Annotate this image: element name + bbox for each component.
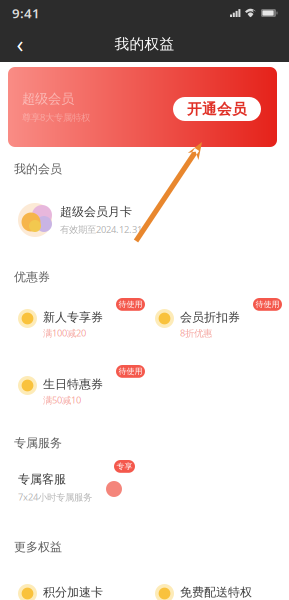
- button[interactable]: 积分加速卡: [16, 571, 138, 600]
- staticText: 积分加速卡: [43, 585, 103, 600]
- staticText: 满50减10: [43, 394, 81, 406]
- button[interactable]: Back: [6, 30, 34, 58]
- staticText: 超级会员: [22, 91, 74, 107]
- button[interactable]: 新人专享券: [16, 296, 138, 334]
- staticText: 更多权益: [14, 540, 62, 554]
- button[interactable]: 生日特惠券: [16, 363, 138, 401]
- staticText: 免费配送特权: [180, 585, 252, 600]
- button[interactable]: 专属客服: [18, 472, 178, 506]
- button[interactable]: 会员折扣券: [153, 296, 275, 334]
- staticText: 我的会员: [14, 162, 62, 176]
- staticText: 开通会员: [187, 100, 247, 118]
- staticText: 有效期至2024.12.31: [60, 223, 142, 236]
- staticText: 8折优惠: [180, 327, 212, 339]
- staticText: 待使用: [118, 299, 142, 309]
- button[interactable]: 免费配送特权: [153, 571, 275, 600]
- staticText: 满100减20: [43, 327, 86, 339]
- staticText: 待使用: [118, 366, 142, 376]
- staticText: 尊享8大专属特权: [22, 111, 90, 123]
- staticText: 专享: [116, 461, 132, 471]
- staticText: 超级会员月卡: [60, 204, 132, 219]
- button[interactable]: 超级会员月卡: [18, 200, 279, 240]
- staticText: 专属服务: [14, 436, 62, 450]
- staticText: 9:41: [12, 4, 40, 22]
- staticText: 会员折扣券: [180, 310, 240, 325]
- staticText: 专属客服: [18, 472, 66, 487]
- staticText: 优惠券: [14, 270, 50, 284]
- staticText: 生日特惠券: [43, 377, 103, 392]
- button[interactable]: 超级会员: [8, 67, 277, 147]
- staticText: 新人专享券: [43, 310, 103, 325]
- staticText: ‹: [16, 29, 23, 59]
- staticText: 待使用: [255, 299, 279, 309]
- staticText: 我的权益: [114, 35, 174, 53]
- staticText: 7x24小时专属服务: [18, 491, 92, 503]
